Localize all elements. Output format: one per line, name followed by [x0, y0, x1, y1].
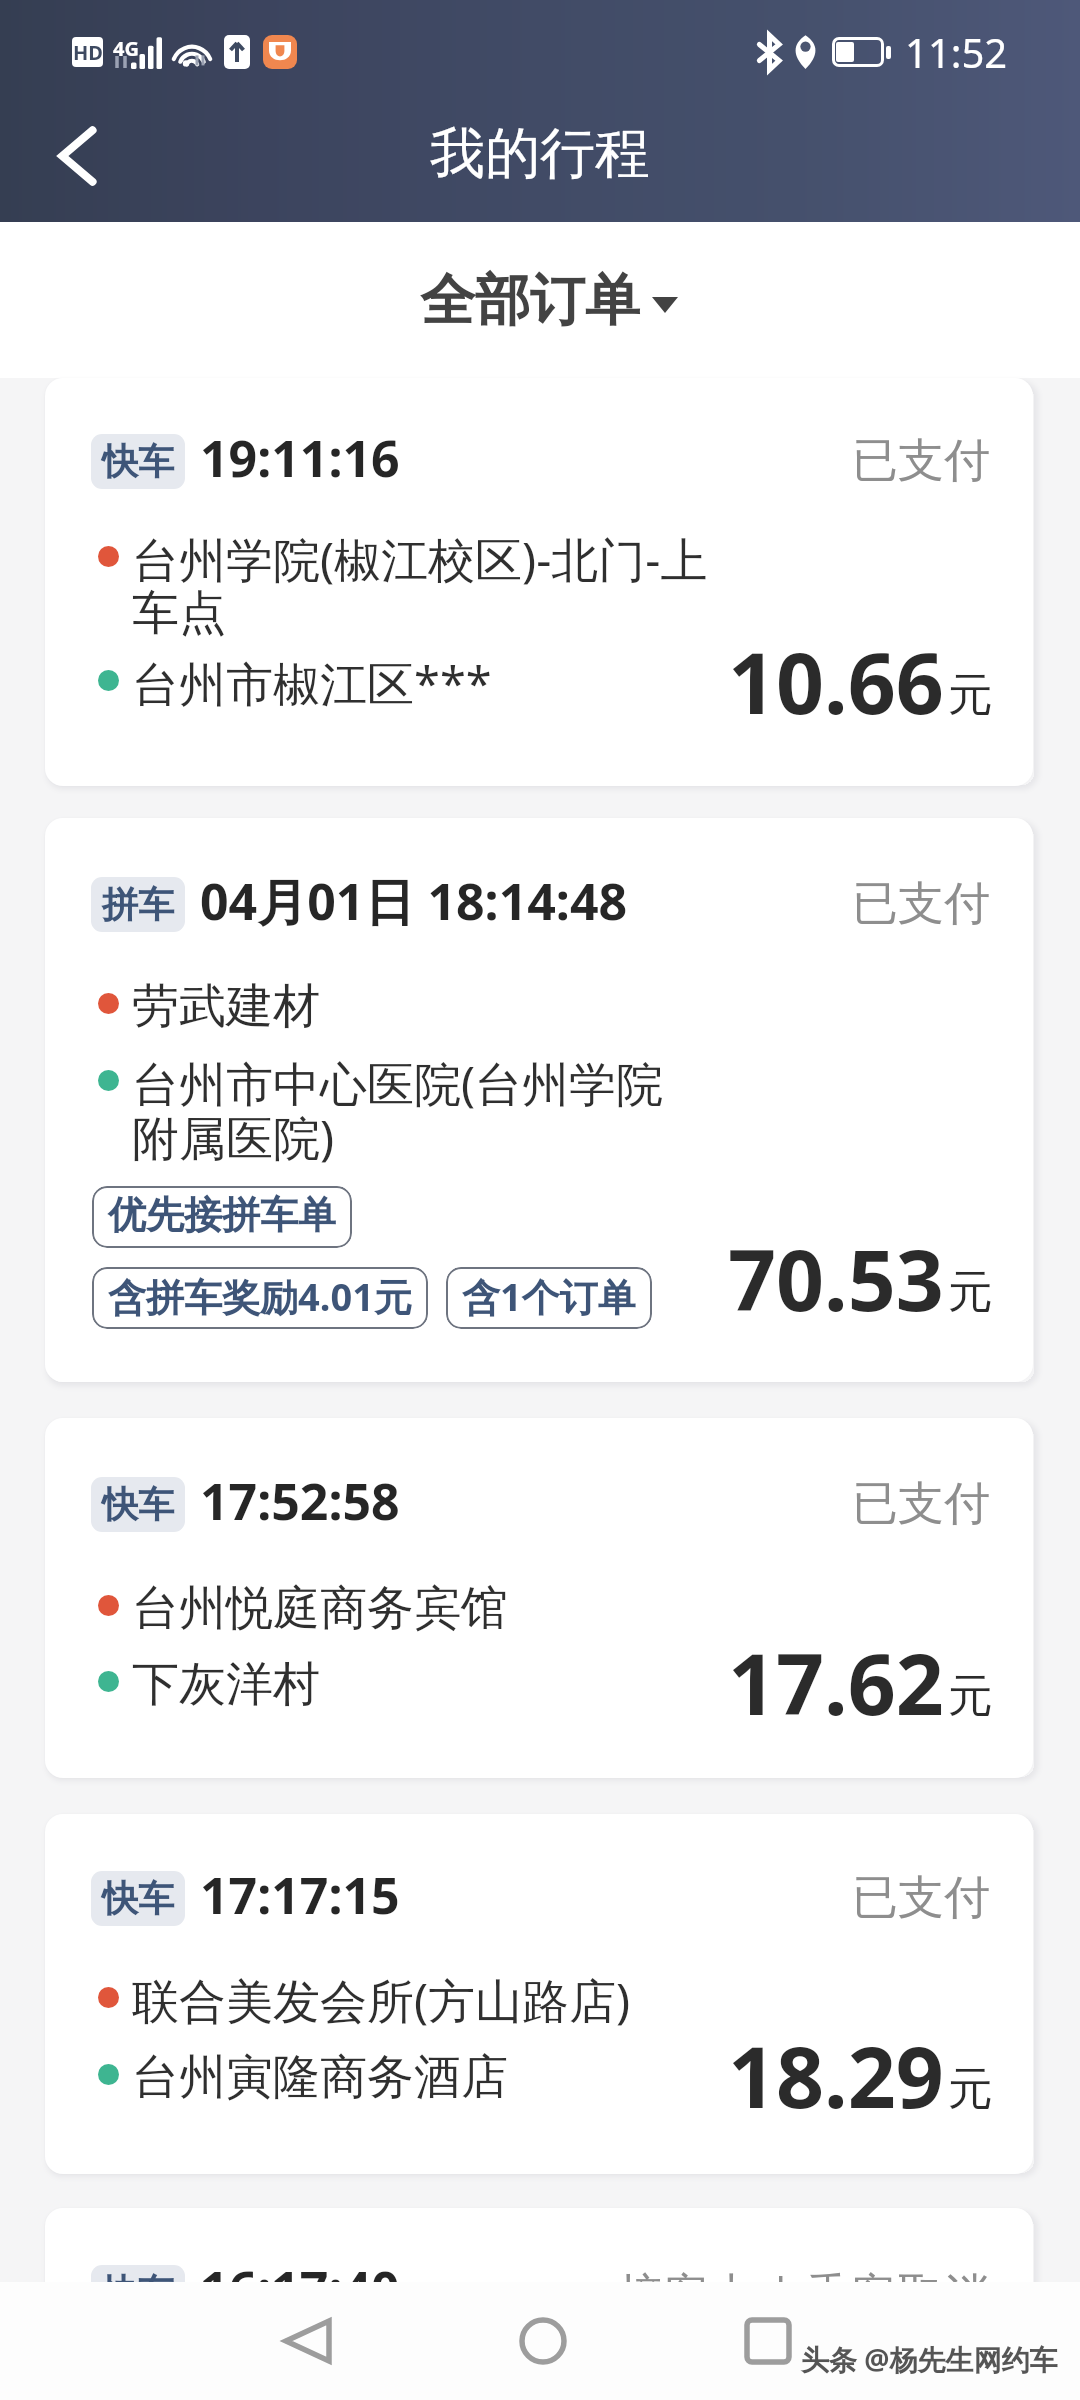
staticText: 18.29	[728, 2018, 944, 2132]
staticText: 劳武建材	[132, 983, 320, 1035]
button[interactable]: Back	[18, 96, 138, 216]
staticText: 我的行程	[430, 119, 650, 188]
staticText: 含1个订单	[462, 1270, 636, 1322]
staticText: 04月01日 18:14:48	[200, 867, 628, 927]
staticText: 快车	[102, 2270, 174, 2315]
button[interactable]: 快车	[45, 1418, 1033, 1778]
staticText: 头条 @杨先生网约车	[801, 2340, 1058, 2378]
staticText: 元	[948, 2061, 993, 2118]
button[interactable]: Back	[242, 2282, 372, 2400]
staticText: 台州市椒江区***	[132, 660, 492, 714]
button[interactable]: 拼车	[45, 818, 1033, 1382]
staticText: 拼车	[102, 882, 174, 927]
staticText: 17:17:15	[200, 1861, 400, 1921]
staticText: 下灰洋村	[132, 1661, 320, 1713]
staticText: 快车	[102, 1482, 174, 1527]
button[interactable]: 快车	[45, 2208, 1033, 2400]
staticText: 11:52	[905, 25, 1008, 79]
staticText: 快车	[102, 439, 174, 484]
staticText: 70.53	[728, 1221, 944, 1335]
staticText: 台州寅隆商务酒店	[132, 2054, 508, 2106]
staticText: 全部订单	[420, 266, 640, 335]
staticText: 快车	[102, 1876, 174, 1921]
staticText: 台州学院(椒江校区)-北门-上车点	[132, 536, 710, 642]
staticText: 17.62	[728, 1625, 944, 1739]
staticText: 优先接拼车单	[108, 1191, 336, 1239]
button[interactable]: 快车	[45, 378, 1033, 786]
staticText: 4G	[113, 35, 139, 62]
button[interactable]: 快车	[45, 1814, 1033, 2174]
staticText: 17:52:58	[200, 1467, 400, 1527]
staticText: 接客中 | 乘客取消	[618, 2262, 990, 2322]
staticText: 已支付	[852, 1475, 990, 1533]
staticText: HD	[73, 39, 103, 66]
staticText: 台州市中心医院(台州学院附属医院)	[132, 1060, 710, 1168]
staticText: 10.66	[728, 624, 944, 738]
staticText: 含拼车奖励4.01元	[108, 1270, 412, 1322]
staticText: 已支付	[852, 1869, 990, 1927]
staticText: 联合美发会所(方山路店)	[132, 1977, 631, 2031]
staticText: 19:11:16	[200, 424, 400, 484]
button[interactable]: Recent apps	[703, 2282, 833, 2400]
staticText: 台州悦庭商务宾馆	[132, 1585, 508, 1637]
staticText: 16:17:40	[200, 2255, 400, 2315]
staticText: 元	[948, 667, 993, 724]
button[interactable]: Home	[478, 2282, 608, 2400]
button[interactable]: 全部订单	[384, 252, 714, 349]
staticText: 已支付	[852, 432, 990, 490]
staticText: 已支付	[852, 875, 990, 933]
staticText: 元	[948, 1668, 993, 1725]
staticText: 元	[948, 1264, 993, 1321]
